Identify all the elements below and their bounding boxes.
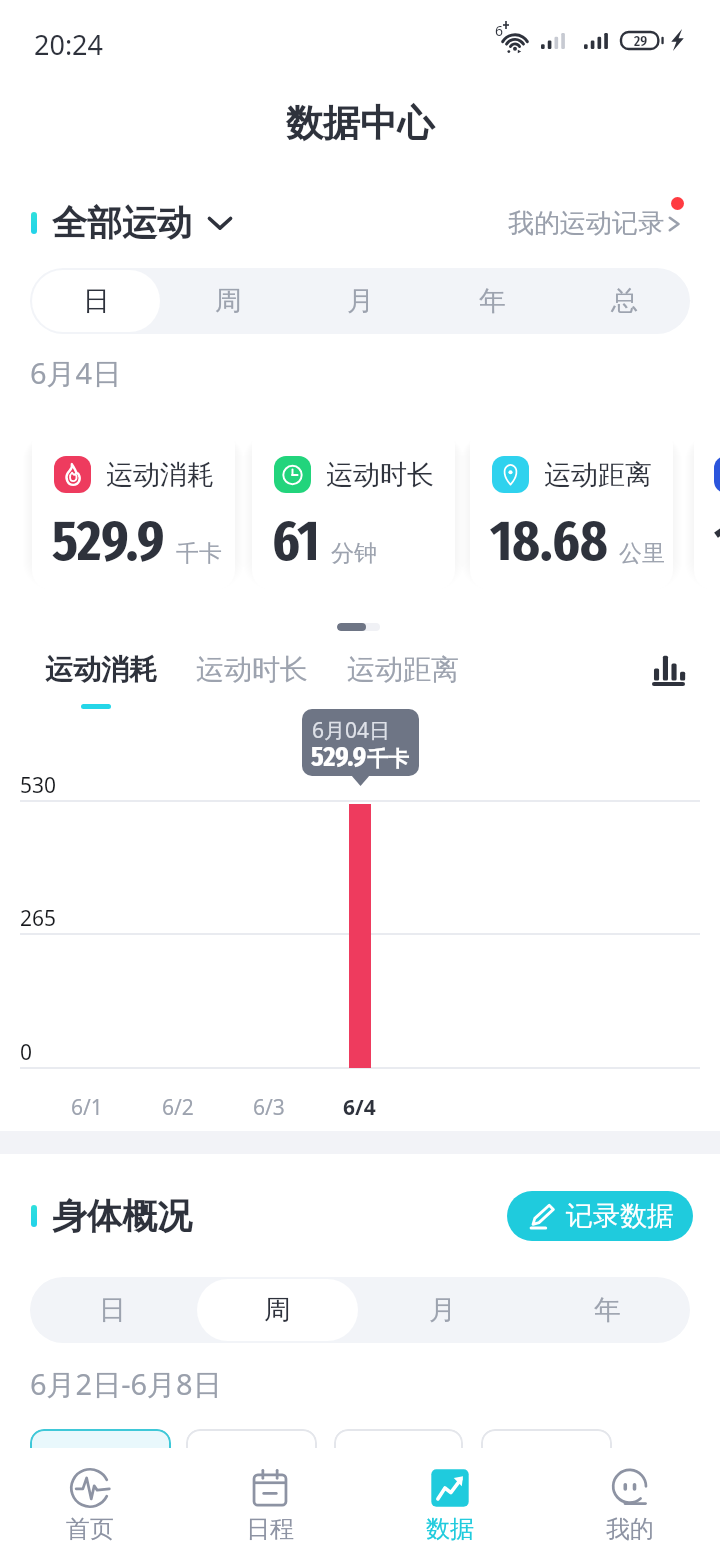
staticText: 运动时长 [326,458,434,492]
button[interactable]: 运动消耗 [32,424,235,590]
staticText: 0 [20,1038,33,1067]
staticText: 首页 [66,1514,114,1544]
staticText: 6/4 [343,1093,376,1122]
button[interactable]: 日 [32,270,160,332]
staticText: 6/2 [162,1093,194,1122]
staticText: 周 [215,284,242,318]
button[interactable]: 切换图表类型 [640,648,696,694]
staticText: 我的运动记录 [508,207,664,240]
button[interactable]: 年 [428,270,556,332]
staticText: 月 [429,1293,456,1327]
button[interactable]: 我的运动记录 [508,207,681,240]
staticText: 6/1 [71,1093,103,1122]
staticText: 1 [714,510,720,578]
staticText: 日程 [246,1514,294,1544]
staticText: 数据 [426,1514,474,1544]
staticText: 6 [495,21,504,40]
button[interactable] [186,1429,317,1479]
staticText: 记录数据 [566,1199,674,1233]
staticText: 周 [264,1293,291,1327]
button[interactable]: 运动消耗 [45,652,157,709]
staticText: 运动距离 [544,458,652,492]
staticText: 6月2日-6月8日 [30,1364,222,1404]
staticText: 运动消耗 [45,652,157,687]
button[interactable] [30,1429,171,1479]
staticText: 运动时长 [196,652,308,687]
button[interactable]: 全部运动 [31,201,232,245]
staticText: 18.68 [490,507,608,575]
staticText: 6月04日 [312,716,391,745]
staticText: 20:24 [34,26,104,63]
staticText: 数据中心 [286,100,434,147]
staticText: 年 [594,1293,621,1327]
staticText: 全部运动 [52,201,192,245]
staticText: 6月4日 [30,353,122,393]
button[interactable]: 首页 [0,1448,180,1554]
button[interactable] [481,1429,612,1479]
staticText: 身体概况 [52,1194,192,1238]
button[interactable]: 运动时长 [252,424,455,590]
staticText: 61 [272,507,320,575]
button[interactable]: 年 [527,1279,688,1341]
button[interactable]: 运动距离 [470,424,673,590]
staticText: 分钟 [331,539,377,568]
staticText: 我的 [606,1514,654,1544]
staticText: 日 [99,1293,126,1327]
staticText: 265 [20,904,57,933]
staticText: 529.9 [311,740,367,774]
staticText: 6/3 [253,1093,285,1122]
button[interactable]: 记录数据 [507,1191,693,1241]
staticText: 日 [83,284,110,318]
button[interactable]: 总 [560,270,688,332]
staticText: 千卡 [176,539,222,568]
button[interactable] [334,1429,463,1479]
button[interactable]: 日 [32,1279,193,1341]
button[interactable]: 我的 [540,1448,720,1554]
button[interactable]: 数据 [360,1448,540,1554]
staticText: 总 [611,284,638,318]
staticText: 公里 [619,539,665,568]
staticText: 530 [20,771,57,800]
staticText: 千卡 [367,746,409,772]
staticText: 月 [347,284,374,318]
staticText: 29 [634,32,648,50]
button[interactable]: 周 [164,270,292,332]
button[interactable]: 运动距离 [347,652,459,709]
button[interactable]: 运动时长 [196,652,308,709]
staticText: 529.9 [52,507,165,575]
button[interactable]: 周 [197,1279,358,1341]
button[interactable]: 月 [362,1279,523,1341]
staticText: 运动消耗 [106,458,214,492]
button[interactable]: 日程 [180,1448,360,1554]
button[interactable]: 月 [296,270,424,332]
staticText: 运动距离 [347,652,459,687]
staticText: 年 [479,284,506,318]
